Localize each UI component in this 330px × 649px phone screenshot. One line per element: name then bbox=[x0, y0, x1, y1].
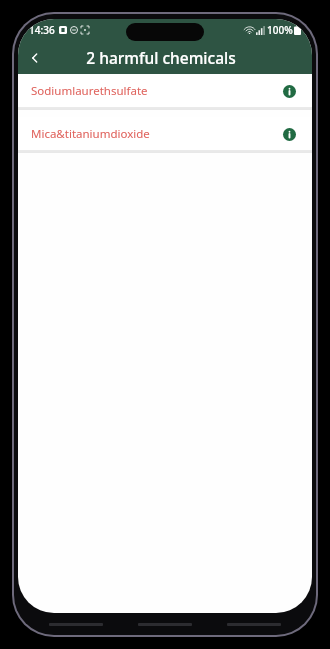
staticText: Mica&titaniumdioxide bbox=[31, 126, 279, 142]
staticText: 100% bbox=[267, 23, 293, 37]
button[interactable]: Information bbox=[279, 81, 299, 101]
button[interactable]: Mica&titaniumdioxide bbox=[18, 117, 312, 150]
staticText: Sodiumlaurethsulfate bbox=[31, 83, 279, 99]
button[interactable]: Sodiumlaurethsulfate bbox=[18, 74, 312, 107]
button[interactable]: Information bbox=[279, 124, 299, 144]
staticText: 14:36 bbox=[29, 23, 55, 37]
staticText: 2 harmful chemicals bbox=[44, 47, 278, 68]
button[interactable]: Back bbox=[18, 41, 52, 74]
